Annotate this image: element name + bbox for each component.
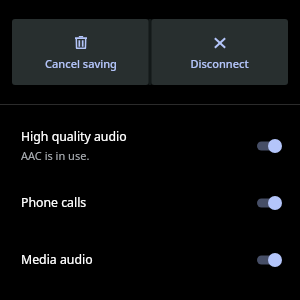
staticText: Disconnect [190, 56, 249, 71]
button[interactable]: Phone calls [0, 174, 300, 231]
button[interactable]: Phone calls on [257, 196, 282, 210]
staticText: Cancel saving [45, 56, 117, 71]
button[interactable]: Disconnect [151, 19, 288, 85]
button[interactable]: Media audio on [257, 253, 282, 267]
button[interactable]: High quality audio on [257, 139, 282, 153]
staticText: AAC is in use. [21, 148, 90, 163]
staticText: Media audio [21, 251, 93, 268]
button[interactable]: Cancel saving [12, 19, 149, 85]
button[interactable]: Media audio [0, 231, 300, 288]
staticText: Phone calls [21, 194, 87, 211]
staticText: High quality audio [21, 128, 127, 145]
button[interactable]: High quality audio [0, 117, 300, 174]
